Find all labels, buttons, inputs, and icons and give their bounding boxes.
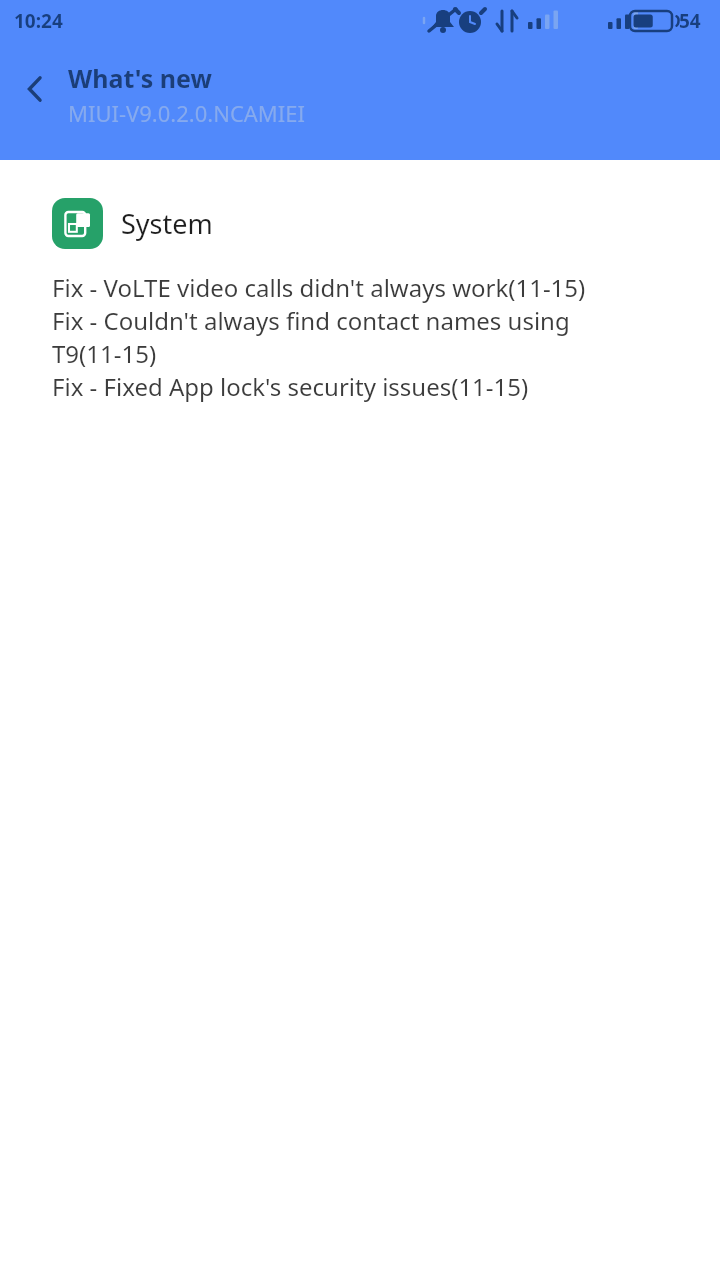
staticText: Fix - Couldn't always find contact names… <box>52 304 680 337</box>
staticText: 54 <box>679 8 701 34</box>
staticText: System <box>121 205 213 242</box>
staticText: Fix - VoLTE video calls didn't always wo… <box>52 271 680 304</box>
staticText: What's new <box>68 61 212 95</box>
staticText: Fix - Fixed App lock's security issues(1… <box>52 370 680 403</box>
button[interactable]: System <box>52 198 696 249</box>
button[interactable]: Back <box>0 60 70 118</box>
staticText: MIUI-V9.0.2.0.NCAMIEI <box>68 98 305 128</box>
staticText: 10:24 <box>14 8 63 34</box>
staticText: T9(11-15) <box>52 337 680 370</box>
